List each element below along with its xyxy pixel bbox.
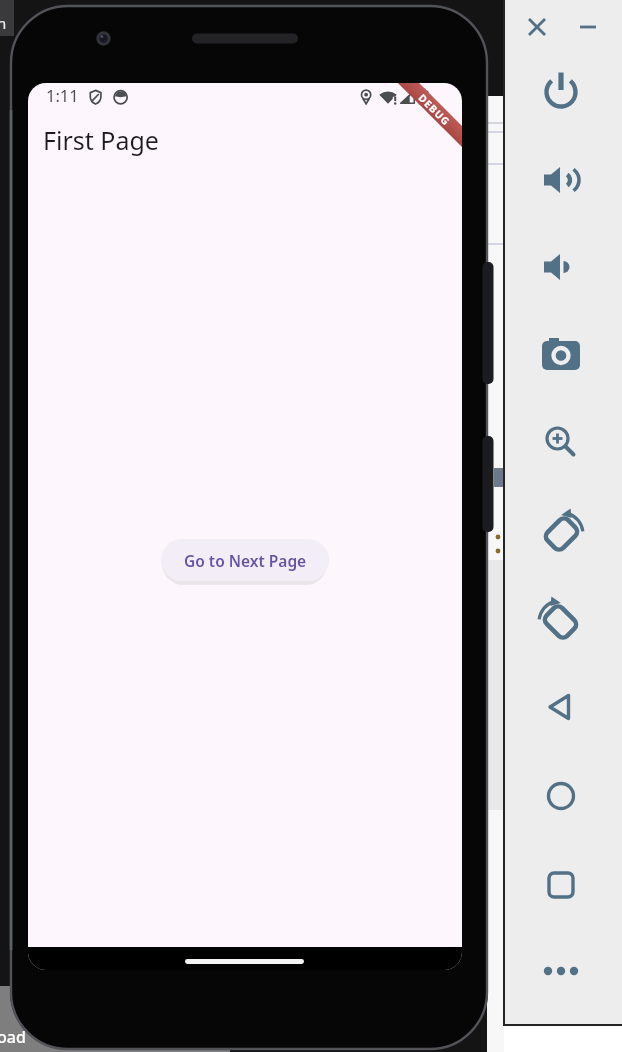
button[interactable] bbox=[537, 508, 585, 556]
button[interactable] bbox=[564, 3, 612, 51]
staticText: DEBUG bbox=[416, 91, 454, 129]
button[interactable] bbox=[537, 772, 585, 820]
button[interactable] bbox=[537, 68, 585, 116]
button[interactable] bbox=[537, 947, 585, 995]
staticText: oad bbox=[0, 1026, 26, 1048]
button[interactable] bbox=[537, 418, 585, 466]
staticText: First Page bbox=[43, 123, 159, 157]
button[interactable] bbox=[537, 596, 585, 644]
button[interactable] bbox=[537, 243, 585, 291]
button[interactable] bbox=[537, 683, 585, 731]
button[interactable] bbox=[537, 861, 585, 909]
button[interactable] bbox=[537, 331, 585, 379]
button[interactable] bbox=[513, 3, 561, 51]
button[interactable] bbox=[537, 156, 585, 204]
staticText: n bbox=[0, 13, 7, 33]
staticText: Go to Next Page bbox=[184, 550, 307, 571]
staticText: 1:11 bbox=[46, 84, 79, 106]
button[interactable]: Go to Next Page bbox=[161, 539, 329, 581]
